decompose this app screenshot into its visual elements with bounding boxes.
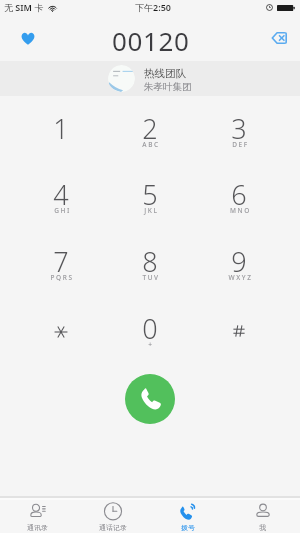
button[interactable] [28,310,94,370]
staticText: 00120 [112,23,190,58]
staticText: 4 [53,176,69,213]
staticText: GHI [54,206,71,215]
button[interactable]: 我 [225,500,300,533]
staticText: WXYZ [228,273,253,282]
button[interactable]: 6 [206,176,272,236]
staticText: PQRS [50,273,74,282]
staticText: 9 [231,243,247,280]
staticText: 无 SIM 卡 [4,1,44,13]
button[interactable]: 热线团队 [0,61,300,96]
button[interactable]: 8 [117,243,183,303]
button[interactable] [206,310,272,370]
button[interactable]: 3 [206,110,272,170]
staticText: + [148,340,154,349]
staticText: 6 [231,176,247,213]
staticText: 3 [231,110,247,147]
staticText: 2 [142,110,158,147]
staticText: 7 [53,243,69,280]
staticText: 热线团队 [144,67,186,80]
staticText: JKL [144,206,159,215]
staticText: 0 [142,310,158,347]
button[interactable]: 0 [117,310,183,370]
button[interactable]: 7 [28,243,94,303]
staticText: 拨号 [181,523,195,532]
button[interactable]: 通讯录 [0,500,75,533]
staticText: 1 [53,110,69,147]
button[interactable]: 2 [117,110,183,170]
staticText: 5 [142,176,158,213]
staticText: TUV [142,273,160,282]
staticText: 下午2:50 [135,1,171,13]
staticText: 8 [142,243,158,280]
staticText: ABC [142,140,160,149]
button[interactable]: 拨号 [150,500,225,533]
staticText: 朱孝叶集团 [144,81,192,93]
button[interactable]: 9 [206,243,272,303]
staticText: MNO [230,206,251,215]
button[interactable]: Backspace [267,26,291,50]
staticText: DEF [232,140,249,149]
staticText: 通讯录 [27,523,48,532]
button[interactable]: Call [125,374,175,424]
button[interactable]: 4 [28,176,94,236]
staticText: 通话记录 [99,523,127,532]
button[interactable]: 通话记录 [75,500,150,533]
button[interactable]: 1 [28,110,94,170]
staticText: 我 [259,523,266,532]
button[interactable]: 5 [117,176,183,236]
button[interactable]: Favorites [17,27,39,49]
